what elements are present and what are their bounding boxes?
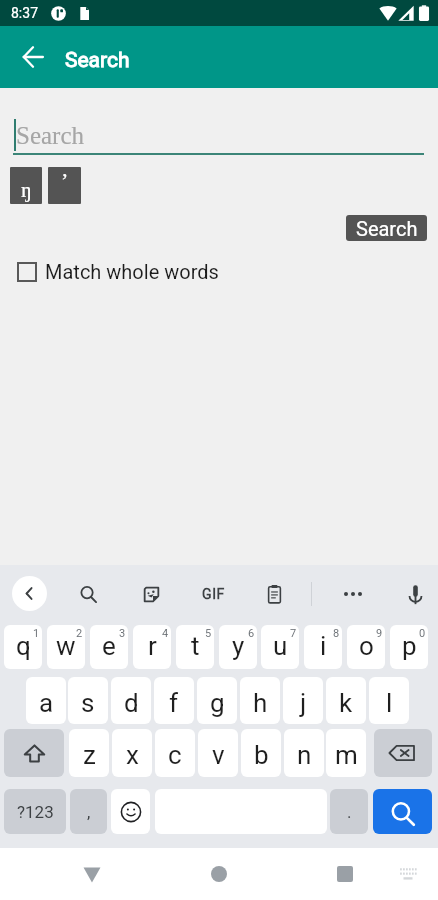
button[interactable]: Previous xyxy=(12,576,47,611)
staticText: . xyxy=(347,802,352,822)
staticText: i xyxy=(320,631,327,661)
staticText: 9 xyxy=(376,627,383,640)
button[interactable]: x xyxy=(112,729,152,777)
button[interactable]: Change keyboard xyxy=(388,848,428,900)
staticText: ’ xyxy=(61,168,69,192)
button[interactable]: w xyxy=(47,625,85,669)
staticText: t xyxy=(191,631,200,661)
button[interactable]: Recent apps xyxy=(321,848,369,900)
button[interactable]: r xyxy=(133,625,171,669)
button[interactable]: Search xyxy=(70,576,106,612)
button[interactable]: k xyxy=(326,677,366,724)
button[interactable]: Backspace xyxy=(374,729,432,777)
button[interactable]: i xyxy=(304,625,342,669)
staticText: y xyxy=(232,631,245,661)
staticText: Search xyxy=(65,48,130,73)
button[interactable]: a xyxy=(26,677,66,724)
staticText: ŋ xyxy=(21,177,32,201)
staticText: f xyxy=(169,688,179,718)
button[interactable]: , xyxy=(70,789,107,834)
staticText: q xyxy=(16,631,31,661)
button[interactable]: Voice input xyxy=(397,576,433,612)
button[interactable]: Emoji xyxy=(111,789,150,834)
staticText: n xyxy=(297,740,312,770)
staticText: g xyxy=(210,688,225,718)
staticText: j xyxy=(300,688,307,718)
staticText: Search xyxy=(356,217,418,240)
staticText: 8:37 xyxy=(11,5,38,21)
button[interactable]: b xyxy=(241,729,281,777)
button[interactable]: More options xyxy=(335,576,371,612)
staticText: 3 xyxy=(119,627,126,640)
staticText: p xyxy=(402,631,417,661)
button[interactable]: z xyxy=(69,729,109,777)
staticText: e xyxy=(102,631,116,661)
button[interactable]: o xyxy=(347,625,385,669)
button[interactable]: u xyxy=(261,625,299,669)
button[interactable]: l xyxy=(369,677,409,724)
staticText: u xyxy=(273,631,288,661)
button[interactable]: Navigate up xyxy=(9,33,57,81)
button[interactable]: Home xyxy=(195,848,243,900)
button[interactable]: v xyxy=(198,729,238,777)
staticText: k xyxy=(339,688,353,718)
staticText: h xyxy=(253,688,268,718)
button[interactable]: p xyxy=(390,625,428,669)
staticText: Search xyxy=(16,122,85,150)
staticText: s xyxy=(81,688,95,718)
button[interactable]: GIF xyxy=(193,574,233,614)
staticText: ?123 xyxy=(17,802,54,822)
button[interactable]: g xyxy=(197,677,237,724)
button[interactable]: Search xyxy=(346,215,427,241)
button[interactable]: Match whole words xyxy=(17,258,219,285)
button[interactable]: s xyxy=(68,677,108,724)
button[interactable]: Stickers xyxy=(133,576,169,612)
button[interactable]: Shift xyxy=(4,729,64,777)
staticText: w xyxy=(56,631,76,661)
button[interactable]: ’ xyxy=(48,167,81,204)
button[interactable]: e xyxy=(90,625,128,669)
button[interactable]: . xyxy=(330,789,368,834)
button[interactable]: t xyxy=(176,625,214,669)
staticText: 7 xyxy=(290,627,297,640)
staticText: 2 xyxy=(76,627,83,640)
staticText: b xyxy=(254,740,269,770)
staticText: GIF xyxy=(202,586,225,602)
button[interactable]: n xyxy=(284,729,324,777)
staticText: a xyxy=(39,688,54,718)
staticText: 8 xyxy=(333,627,340,640)
staticText: r xyxy=(148,631,157,661)
staticText: 5 xyxy=(205,627,212,640)
staticText: c xyxy=(168,740,182,770)
button[interactable]: j xyxy=(283,677,323,724)
staticText: Match whole words xyxy=(45,260,219,283)
button[interactable]: Search xyxy=(373,789,432,834)
staticText: l xyxy=(386,688,393,718)
staticText: d xyxy=(124,688,139,718)
button[interactable]: h xyxy=(240,677,280,724)
staticText: x xyxy=(126,740,139,770)
staticText: 6 xyxy=(248,627,255,640)
button[interactable]: c xyxy=(155,729,195,777)
staticText: , xyxy=(87,802,91,822)
staticText: v xyxy=(212,740,225,770)
button[interactable]: Back xyxy=(68,848,116,900)
staticText: 1 xyxy=(33,627,40,640)
staticText: m xyxy=(335,740,358,770)
button[interactable]: ?123 xyxy=(4,789,66,834)
button[interactable]: Clipboard xyxy=(256,576,292,612)
button[interactable]: m xyxy=(326,729,366,777)
button[interactable]: d xyxy=(111,677,151,724)
button[interactable]: q xyxy=(4,625,42,669)
staticText: 0 xyxy=(419,627,426,640)
button[interactable]: y xyxy=(219,625,257,669)
staticText: 4 xyxy=(162,627,169,640)
staticText: z xyxy=(83,740,96,770)
button[interactable]: ŋ xyxy=(10,167,42,204)
staticText: o xyxy=(359,631,374,661)
button[interactable]: f xyxy=(154,677,194,724)
